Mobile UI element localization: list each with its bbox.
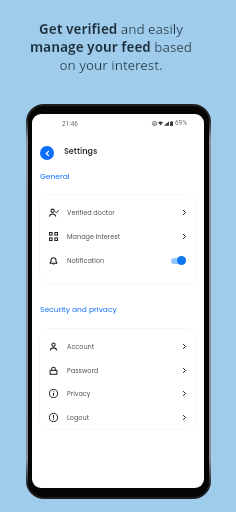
button[interactable]: Privacy	[39, 381, 197, 405]
staticText: Password	[67, 366, 99, 375]
staticText: 21:46	[62, 120, 78, 128]
staticText: Account	[67, 342, 95, 351]
button[interactable]: Manage Interest	[39, 224, 197, 248]
staticText: Notification	[67, 256, 105, 265]
button[interactable]: Logout	[39, 405, 197, 429]
button[interactable]: Password	[39, 358, 197, 382]
staticText: Manage Interest	[67, 232, 121, 241]
staticText: Verified doctor	[67, 208, 115, 217]
button[interactable]: Account	[39, 334, 197, 358]
button[interactable]: Back	[40, 146, 54, 160]
staticText: Logout	[67, 413, 90, 422]
staticText: Privacy	[67, 389, 91, 398]
button[interactable]: Notification	[39, 248, 197, 272]
staticText: Settings	[64, 146, 98, 157]
staticText: Security and privacy	[40, 304, 117, 314]
button[interactable]: Verified doctor	[39, 200, 197, 224]
staticText: General	[40, 171, 70, 181]
staticText: Get verified and easily manage your feed…	[11, 20, 211, 74]
staticText: 69%	[175, 119, 187, 127]
